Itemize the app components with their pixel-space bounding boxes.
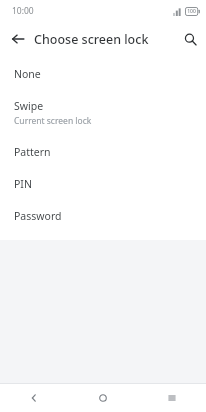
staticText: None	[14, 67, 41, 81]
staticText: Choose screen lock	[34, 31, 149, 48]
staticText: Current screen lock	[14, 115, 92, 127]
button[interactable]: None	[0, 58, 206, 90]
button[interactable]: Password	[0, 200, 206, 232]
button[interactable]: Swipe	[0, 90, 206, 136]
button[interactable]: Pattern	[0, 136, 206, 168]
staticText: Swipe	[14, 99, 44, 113]
staticText: PIN	[14, 177, 32, 191]
button[interactable]: Back	[0, 384, 68, 412]
staticText: 100	[187, 8, 196, 15]
staticText: 10:00	[12, 5, 34, 17]
staticText: Pattern	[14, 145, 51, 159]
button[interactable]: PIN	[0, 168, 206, 200]
button[interactable]: Search	[178, 27, 202, 51]
staticText: Password	[14, 209, 62, 223]
button[interactable]: Back	[6, 27, 30, 51]
button[interactable]: Recent apps	[137, 384, 206, 412]
button[interactable]: Home	[68, 384, 137, 412]
